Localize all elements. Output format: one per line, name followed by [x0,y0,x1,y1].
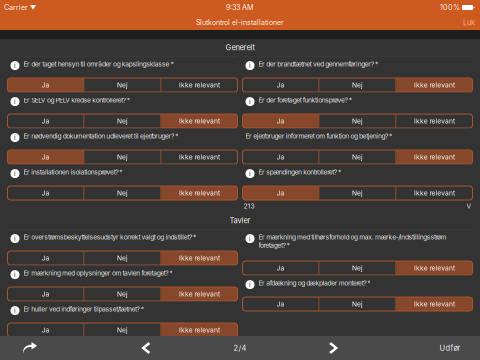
staticText: Ja [41,290,49,298]
staticText: Nej [352,81,363,89]
staticText: Ikke relevant [179,189,220,197]
staticText: i [14,271,16,279]
staticText: 2/4 [233,343,246,352]
staticText: Er spændingen kontrolleret? * [258,168,341,176]
staticText: Ikke relevant [179,254,220,262]
staticText: Er der brandtætnet ved gennemføringer? * [258,60,378,68]
staticText: Nej [117,189,128,197]
staticText: Er mærkning med tilhørsforhold og max. m… [258,233,447,249]
staticText: Er der taget hensyn til områder og kapsl… [23,60,173,68]
staticText: Nej [117,153,128,161]
button[interactable]: Ikke relevant [396,150,472,164]
button[interactable]: Ikke relevant [396,186,472,200]
button[interactable]: Ikke relevant [161,323,237,337]
button[interactable]: Udfør [422,336,478,360]
staticText: Ja [276,117,284,125]
button[interactable]: Nej [319,78,395,92]
staticText: Ikke relevant [179,326,220,334]
staticText: Ikke relevant [414,264,455,272]
button[interactable]: Ikke relevant [396,297,472,311]
button[interactable]: Ikke relevant [396,78,472,92]
button[interactable]: Nej [319,261,395,275]
staticText: Er huller ved indføringer tilpasset/tætn… [23,305,144,313]
button[interactable]: Previous page [118,336,174,360]
staticText: 100% [440,3,460,12]
staticText: i [249,62,251,70]
button[interactable]: Ja [7,287,83,301]
staticText: Ikke relevant [414,300,455,308]
button[interactable]: Ja [7,251,83,265]
button[interactable]: Nej [84,186,160,200]
staticText: Nej [117,117,128,125]
staticText: Er der foretaget funktionsprøve? * [258,96,352,104]
staticText: i [14,235,16,243]
button[interactable]: Ja [7,78,83,92]
staticText: Nej [117,326,128,334]
button[interactable]: Nej [84,251,160,265]
button[interactable]: Ja [7,186,83,200]
button[interactable]: Nej [84,150,160,164]
button[interactable]: Nej [84,78,160,92]
staticText: Nej [352,300,363,308]
staticText: Carrier [4,3,28,12]
button[interactable]: Nej [84,114,160,128]
staticText: Ikke relevant [414,81,455,89]
button[interactable]: Ikke relevant [396,261,472,275]
staticText: Ikke relevant [179,290,220,298]
staticText: Ja [41,153,49,161]
staticText: Nej [352,264,363,272]
button[interactable]: Ikke relevant [161,150,237,164]
button[interactable]: Nej [84,323,160,337]
button[interactable]: Nej [319,186,395,200]
staticText: Er SELV og PELV kredse kontrolleret? * [23,96,130,104]
button[interactable]: Luk [458,15,480,30]
button[interactable]: Ja [242,261,318,275]
button[interactable]: Nej [319,114,395,128]
button[interactable]: Ikke relevant [161,114,237,128]
staticText: Nej [117,254,128,262]
button[interactable]: Ja [7,150,83,164]
button[interactable]: Nej [319,150,395,164]
staticText: i [249,281,251,289]
staticText: Ikke relevant [179,153,220,161]
staticText: Slutkontrol el-installationer [196,18,284,27]
staticText: Ikke relevant [414,189,455,197]
button[interactable]: Ja [7,323,83,337]
button[interactable]: Nej [84,287,160,301]
staticText: Er afdækning og dækplader monteret? * [258,279,370,287]
button[interactable]: Ikke relevant [161,186,237,200]
button[interactable]: Ikke relevant [396,114,472,128]
staticText: Nej [352,117,363,125]
staticText: i [14,98,16,106]
button[interactable]: Ja [242,297,318,311]
staticText: Nej [352,153,363,161]
button[interactable]: Ja [7,114,83,128]
staticText: Er nødvendig dokumentation udleveret til… [23,132,178,140]
staticText: Ikke relevant [414,117,455,125]
staticText: Ja [41,189,49,197]
staticText: Er ejer/bruger informeret om funktion og… [245,132,392,140]
button[interactable]: Ja [242,114,318,128]
staticText: Ja [41,117,49,125]
button[interactable]: Ikke relevant [161,251,237,265]
staticText: Nej [117,81,128,89]
staticText: Nej [117,290,128,298]
button[interactable]: Ja [242,150,318,164]
button[interactable]: Share [2,336,58,360]
staticText: Ikke relevant [179,81,220,89]
staticText: Ja [41,254,49,262]
button[interactable]: Ikke relevant [161,78,237,92]
button[interactable]: Ja [242,78,318,92]
staticText: Udfør [439,343,460,352]
button[interactable]: Next page [306,336,362,360]
staticText: i [249,170,251,178]
button[interactable]: Ikke relevant [161,287,237,301]
staticText: Ja [276,153,284,161]
staticText: Nej [352,189,363,197]
button[interactable]: Ja [242,186,318,200]
staticText: Ja [276,300,284,308]
button[interactable]: Nej [319,297,395,311]
staticText: V [466,202,471,210]
staticText: i [14,307,16,315]
staticText: Er mærkning med oplysninger om tavlen fo… [23,269,172,277]
